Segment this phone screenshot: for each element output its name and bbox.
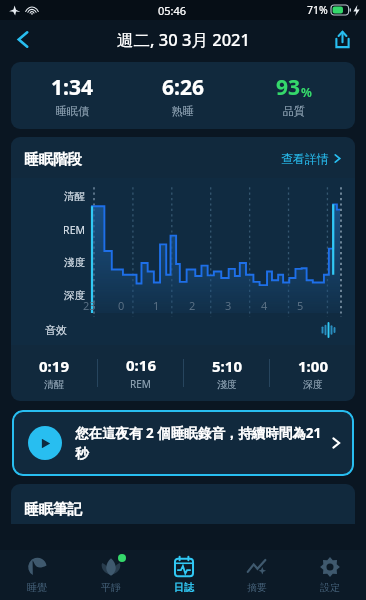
staticText: 睡眠階段: [24, 150, 82, 168]
staticText: 0:19: [39, 356, 69, 376]
staticText: 週二, 30 3月 2021: [117, 28, 250, 51]
staticText: 音效: [45, 323, 67, 337]
staticText: REM: [45, 223, 85, 237]
staticText: 1:34: [51, 73, 93, 102]
staticText: 71%: [307, 3, 328, 17]
staticText: 0:16: [126, 355, 156, 375]
button[interactable]: 睡覺: [0, 550, 74, 600]
staticText: 1:00: [298, 356, 328, 376]
button[interactable]: Share: [326, 23, 358, 55]
staticText: 深度: [303, 378, 323, 391]
staticText: 23: [83, 298, 96, 313]
staticText: 5: [297, 298, 304, 313]
staticText: 2: [189, 298, 196, 313]
staticText: 清醒: [45, 190, 85, 203]
staticText: 清醒: [44, 378, 64, 391]
staticText: 1: [153, 298, 160, 313]
button[interactable]: 您在這夜有 2 個睡眠錄音，持續時間為21秒: [12, 410, 354, 476]
staticText: 睡眠筆記: [24, 500, 82, 518]
staticText: REM: [130, 377, 151, 391]
staticText: 淺度: [45, 256, 85, 269]
button[interactable]: 摘要: [220, 550, 293, 600]
staticText: 日誌: [174, 581, 194, 594]
staticText: 深度: [45, 289, 85, 302]
staticText: 3: [225, 298, 232, 313]
staticText: 睡覺: [27, 581, 47, 594]
button[interactable]: 日誌: [147, 550, 220, 600]
staticText: 設定: [320, 581, 340, 594]
staticText: 93: [276, 73, 301, 102]
button[interactable]: Back: [6, 22, 40, 56]
staticText: 睡眠債: [56, 104, 89, 118]
button[interactable]: 設定: [293, 550, 366, 600]
staticText: 熟睡: [172, 104, 194, 118]
button[interactable]: 睡眠筆記: [11, 484, 355, 524]
button[interactable]: 1:34: [11, 62, 355, 129]
staticText: 查看詳情: [281, 151, 329, 166]
button[interactable]: 查看詳情: [279, 149, 344, 168]
button[interactable]: 平靜: [74, 550, 147, 600]
staticText: 摘要: [247, 581, 267, 594]
staticText: 您在這夜有 2 個睡眠錄音，持續時間為21秒: [75, 424, 324, 462]
staticText: 平靜: [101, 581, 121, 594]
staticText: 6:26: [162, 73, 204, 102]
staticText: 0: [118, 298, 125, 313]
staticText: 品質: [283, 104, 305, 118]
staticText: %: [301, 84, 312, 100]
staticText: 淺度: [217, 378, 237, 391]
staticText: 4: [261, 298, 268, 313]
staticText: 05:46: [158, 3, 187, 18]
staticText: 5:10: [212, 356, 242, 376]
button[interactable]: Sound: [318, 320, 339, 340]
